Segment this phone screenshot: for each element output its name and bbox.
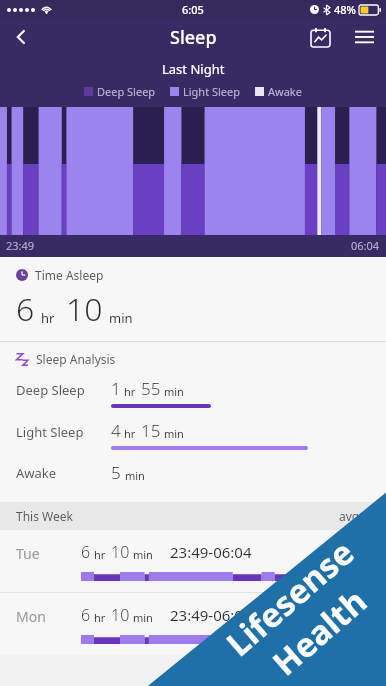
staticText: hr <box>94 547 106 562</box>
staticText: 6 <box>81 604 91 626</box>
staticText: 23:49-06:04 <box>170 605 252 625</box>
staticText: 55 <box>141 377 161 400</box>
staticText: Deep Sleep <box>16 381 85 399</box>
button[interactable]: Back <box>0 18 42 56</box>
staticText: hr <box>94 610 106 625</box>
staticText: Lifesense <box>216 530 363 666</box>
staticText: Awake <box>268 84 302 99</box>
staticText: 23:49 <box>6 238 35 253</box>
staticText: avg 5 <box>339 508 370 524</box>
staticText: min <box>125 468 145 483</box>
staticText: This Week <box>16 508 73 524</box>
staticText: Sleep <box>170 25 217 50</box>
staticText: Deep Sleep <box>97 84 156 99</box>
staticText: 15 <box>141 419 161 442</box>
staticText: 6:05 <box>182 2 204 17</box>
button[interactable]: History <box>298 18 342 56</box>
staticText: 6 <box>16 287 35 331</box>
staticText: min <box>164 426 184 441</box>
staticText: Last Night <box>162 60 225 78</box>
staticText: 48% <box>334 2 356 17</box>
staticText: hr <box>124 384 136 399</box>
staticText: 23:49-06:04 <box>170 542 252 562</box>
button[interactable]: Tue <box>0 530 386 592</box>
staticText: 6 <box>81 541 91 563</box>
staticText: Time Asleep <box>35 267 104 283</box>
staticText: 1 <box>111 377 121 400</box>
staticText: Health <box>263 579 376 685</box>
staticText: hr <box>41 309 55 327</box>
staticText: hr <box>124 426 136 441</box>
button[interactable]: Menu <box>342 18 386 56</box>
button[interactable]: Mon <box>0 593 386 655</box>
staticText: Light Sleep <box>183 84 241 99</box>
staticText: Mon <box>16 607 46 626</box>
staticText: Tue <box>16 544 40 563</box>
staticText: min <box>133 610 153 625</box>
staticText: Sleep Analysis <box>36 351 116 367</box>
staticText: 10 <box>66 287 103 331</box>
staticText: Awake <box>16 464 57 482</box>
staticText: min <box>109 309 133 327</box>
staticText: 4 <box>111 419 121 442</box>
staticText: 06:04 <box>351 238 380 253</box>
staticText: min <box>133 547 153 562</box>
staticText: 10 <box>111 604 130 626</box>
staticText: 5 <box>111 461 121 484</box>
staticText: min <box>164 384 184 399</box>
staticText: 10 <box>111 541 130 563</box>
staticText: Light Sleep <box>16 423 84 441</box>
